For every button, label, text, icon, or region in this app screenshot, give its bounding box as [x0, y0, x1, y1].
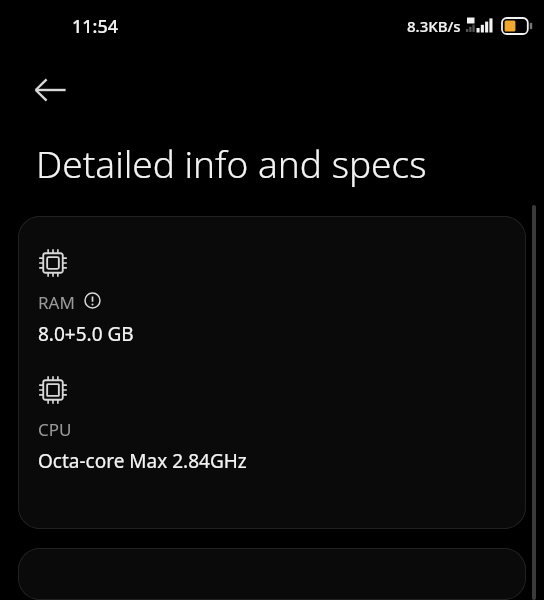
staticText: Octa-core Max 2.84GHz	[38, 448, 247, 474]
staticText: 8.0+5.0 GB	[38, 321, 134, 347]
button[interactable]: Back	[26, 66, 74, 114]
button[interactable]: RAM	[18, 216, 526, 529]
staticText: Detailed info and specs	[36, 138, 427, 188]
staticText: 8.3KB/s	[407, 16, 461, 36]
staticText: 11:54	[72, 14, 119, 39]
staticText: RAM	[38, 291, 75, 314]
staticText: CPU	[38, 418, 72, 441]
button[interactable]	[18, 548, 526, 600]
button[interactable]: RAM info	[84, 292, 106, 314]
